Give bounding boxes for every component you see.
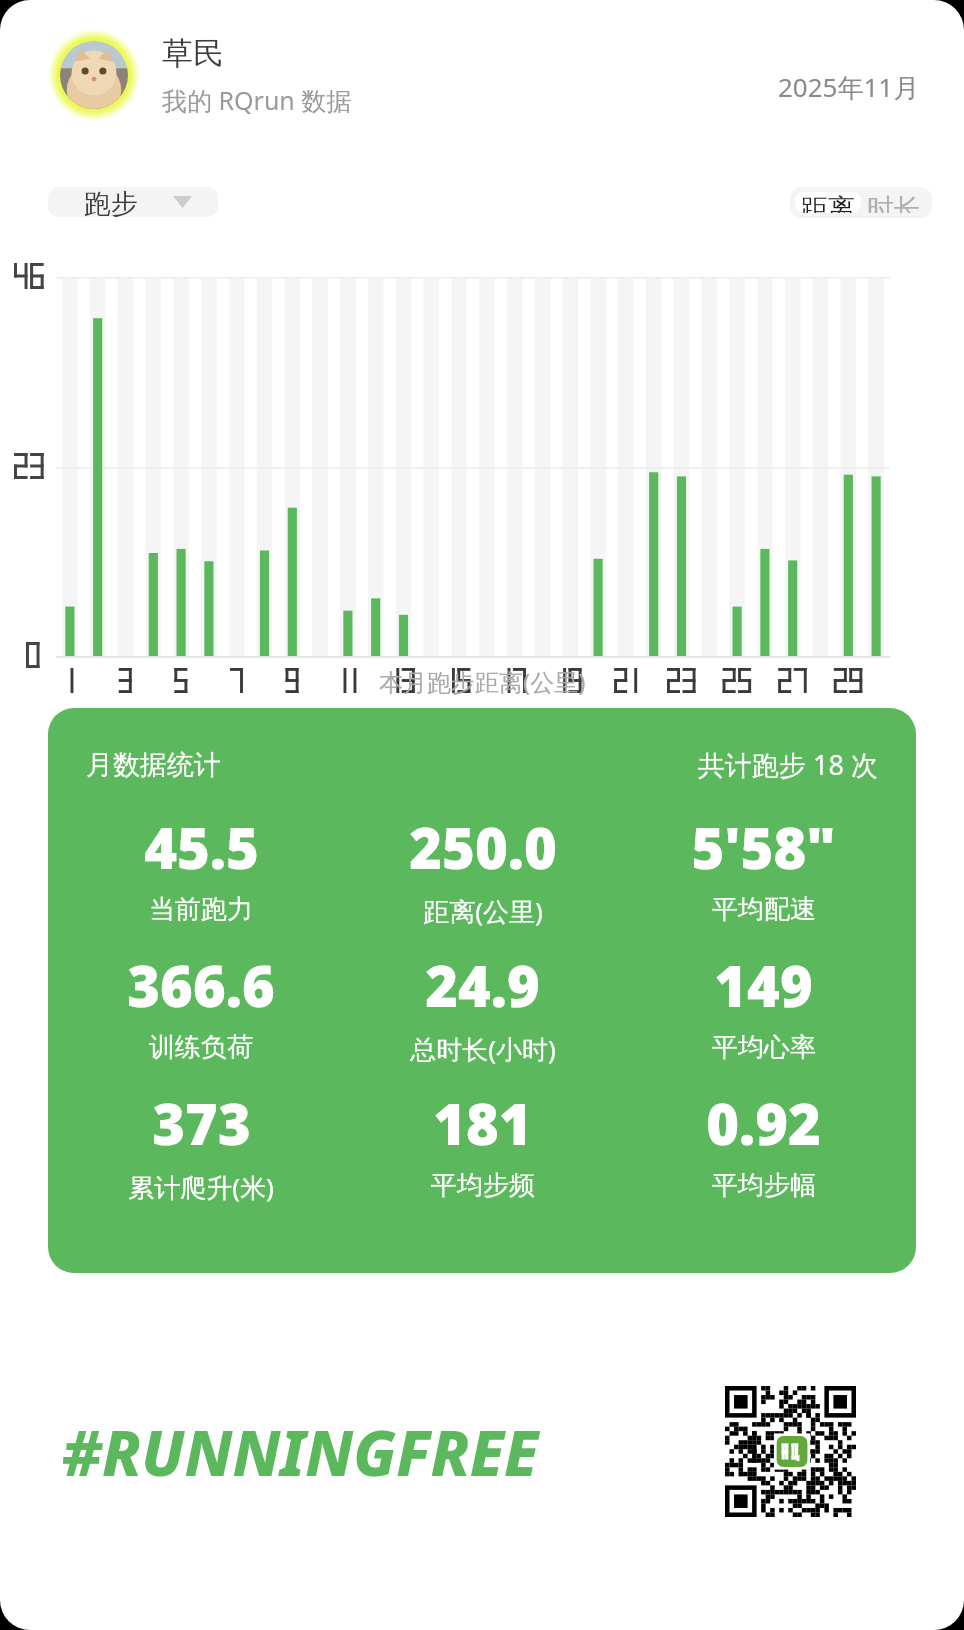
staticText: 月数据统计 xyxy=(86,748,221,782)
staticText: 我的 RQrun 数据 xyxy=(162,83,352,117)
staticText: 累计爬升(米) xyxy=(128,1169,274,1205)
button[interactable]: 距离 xyxy=(795,192,861,213)
button[interactable]: 250.0 xyxy=(342,809,623,929)
staticText: 平均步幅 xyxy=(712,1169,816,1202)
staticText: 平均配速 xyxy=(712,893,816,926)
staticText: 时长 xyxy=(867,192,921,213)
staticText: 373 xyxy=(152,1085,251,1161)
staticText: 2025年11月 xyxy=(778,69,920,105)
staticText: 距离 xyxy=(801,192,855,213)
staticText: 总时长(小时) xyxy=(410,1031,556,1067)
staticText: 250.0 xyxy=(409,809,557,885)
staticText: 366.6 xyxy=(127,947,275,1023)
button[interactable]: 时长 xyxy=(861,192,927,213)
staticText: 距离(公里) xyxy=(423,893,543,929)
staticText: 24.9 xyxy=(425,947,540,1023)
staticText: 45.5 xyxy=(144,809,259,885)
button[interactable]: 跑步 xyxy=(48,187,218,217)
staticText: 平均心率 xyxy=(712,1031,816,1064)
button[interactable]: Profile avatar xyxy=(48,29,140,121)
staticText: 跑步 xyxy=(84,187,138,217)
button[interactable]: QR code xyxy=(725,1386,856,1517)
staticText: 149 xyxy=(714,947,813,1023)
button[interactable]: 149 xyxy=(623,947,904,1064)
staticText: 平均步频 xyxy=(431,1169,535,1202)
staticText: #RUNNINGFREE xyxy=(62,1410,539,1494)
button[interactable]: 181 xyxy=(342,1085,623,1202)
staticText: 0.92 xyxy=(706,1085,821,1161)
button[interactable]: 0.92 xyxy=(623,1085,904,1202)
button[interactable]: 366.6 xyxy=(60,947,342,1064)
staticText: 训练负荷 xyxy=(149,1031,253,1064)
staticText: 当前跑力 xyxy=(149,893,253,926)
button[interactable]: 5'58" xyxy=(623,809,904,926)
staticText: 共计跑步 18 次 xyxy=(698,746,878,783)
button[interactable]: 373 xyxy=(60,1085,342,1205)
staticText: 181 xyxy=(433,1085,532,1161)
button[interactable]: 月数据统计 xyxy=(48,708,916,1273)
staticText: 草民 xyxy=(162,34,224,73)
button[interactable]: 24.9 xyxy=(342,947,623,1067)
staticText: 本月跑步距离(公里) xyxy=(379,665,586,698)
staticText: 5'58" xyxy=(691,809,836,885)
button[interactable]: 45.5 xyxy=(60,809,342,926)
